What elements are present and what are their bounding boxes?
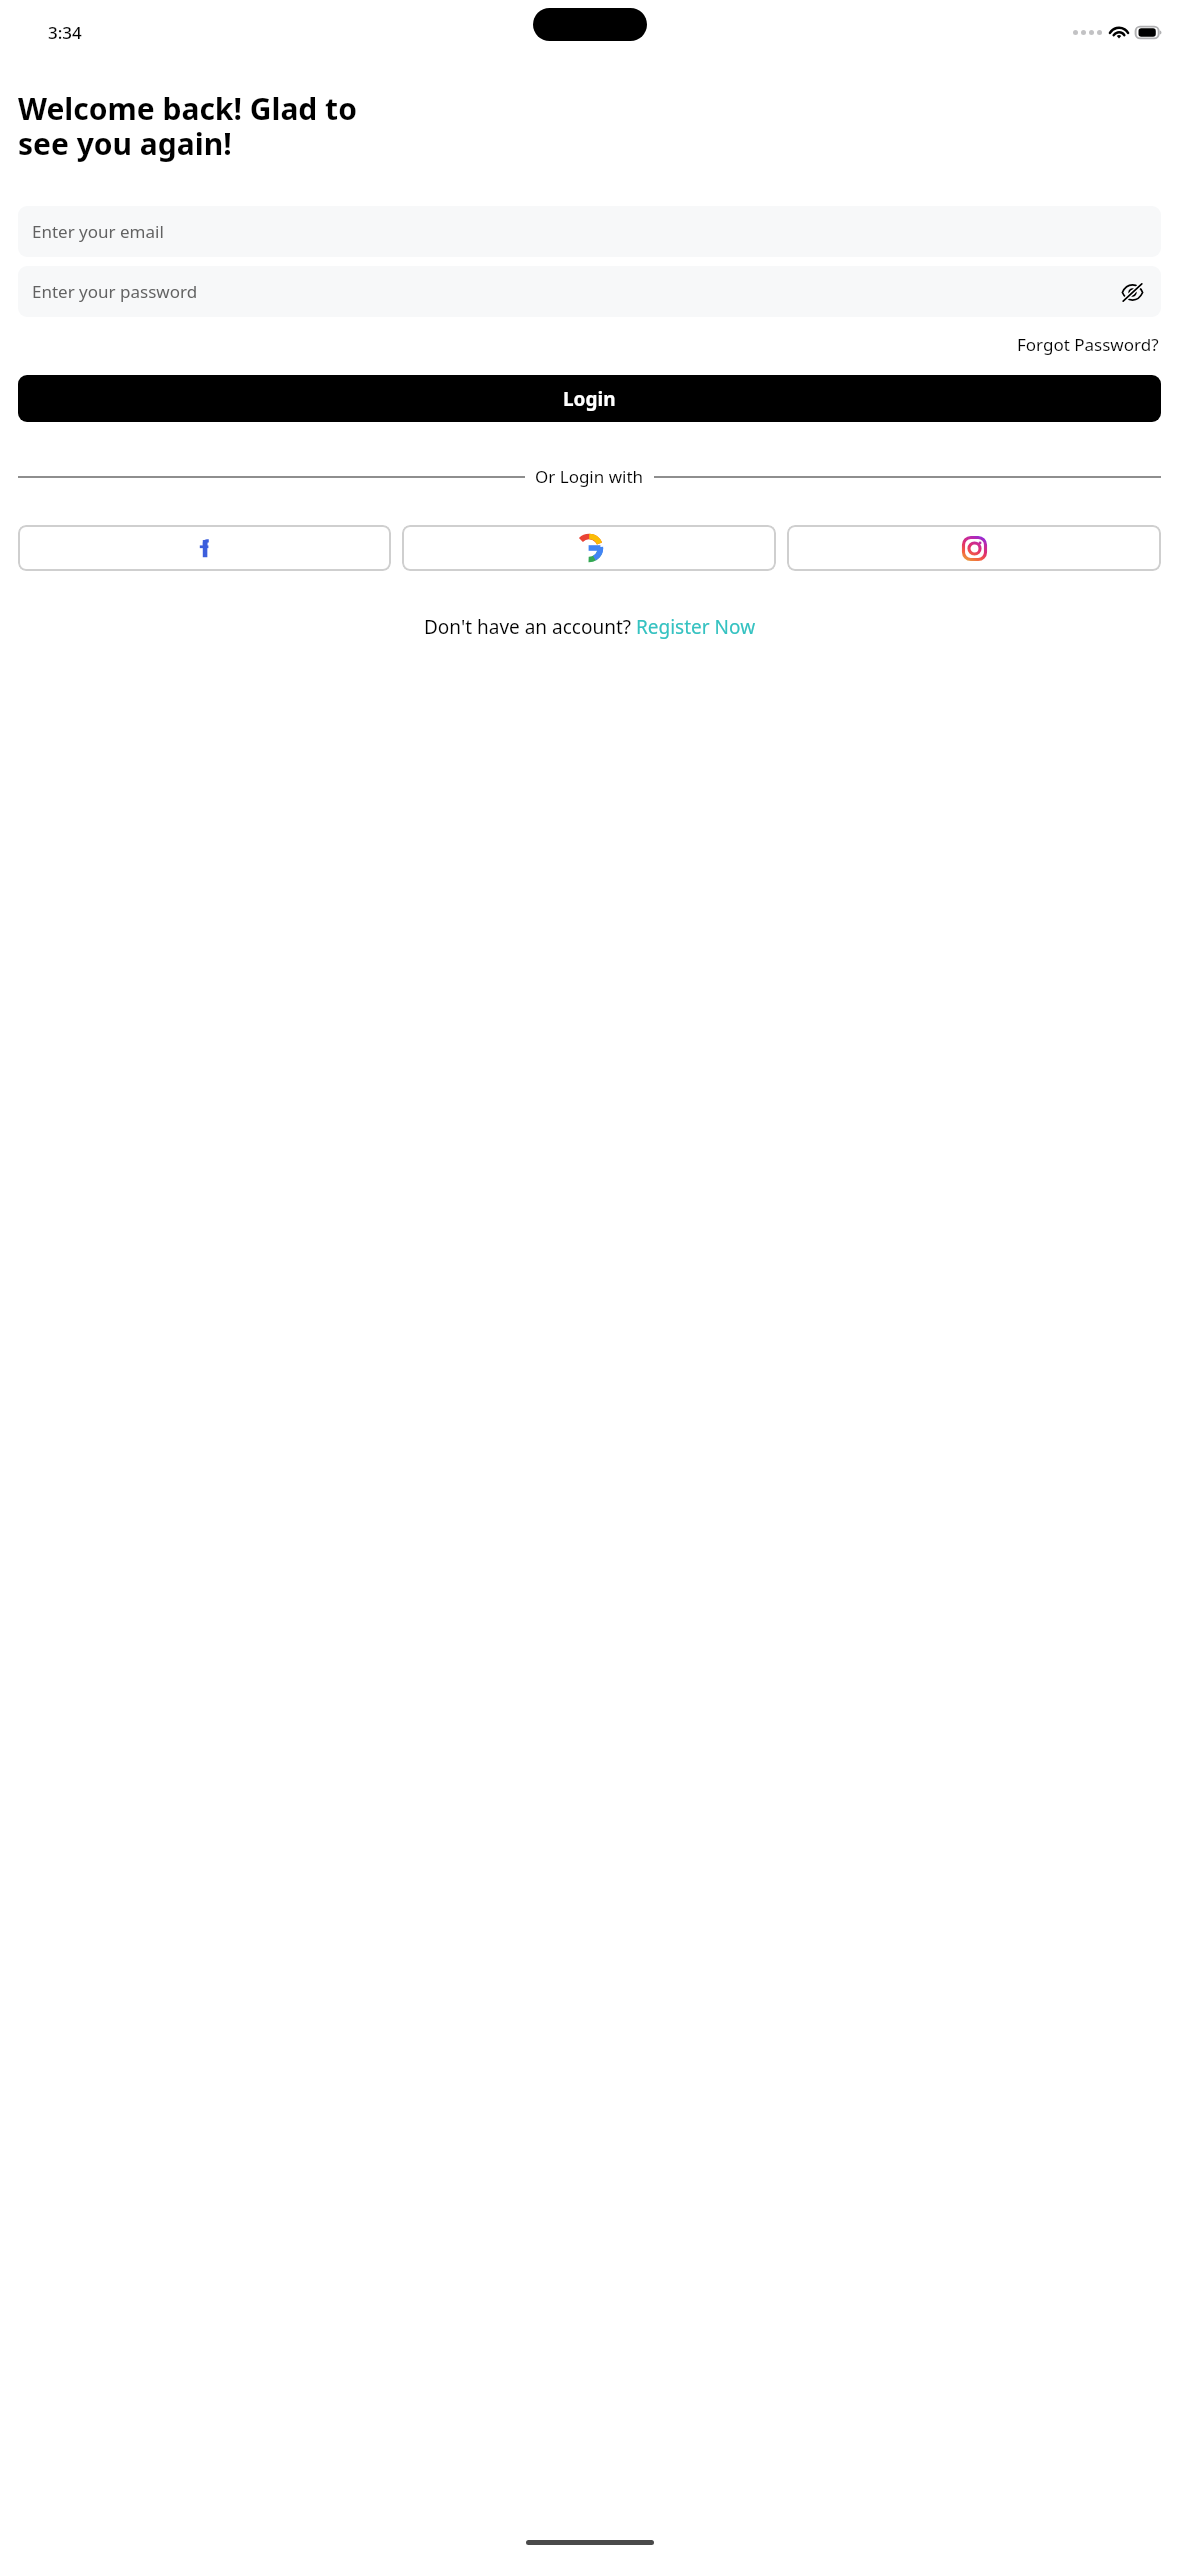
staticText: 3:34	[48, 21, 82, 44]
button[interactable]: Sign in with Instagram	[787, 525, 1161, 571]
button[interactable]: Enter your email	[18, 206, 1161, 257]
button[interactable]: Show password	[1117, 277, 1147, 307]
button[interactable]: Enter your password	[18, 266, 1161, 317]
staticText: Enter your email	[32, 220, 164, 243]
button[interactable]: Login	[18, 375, 1161, 422]
button[interactable]: Forgot Password?	[1015, 331, 1161, 358]
button[interactable]: Register Now	[636, 614, 756, 640]
staticText: Don't have an account?	[424, 614, 636, 640]
staticText: Login	[563, 386, 616, 412]
staticText: Or Login with	[535, 465, 644, 488]
staticText: Welcome back! Glad to see you again!	[18, 88, 357, 164]
staticText: Forgot Password?	[1017, 333, 1159, 356]
button[interactable]: Sign in with Facebook	[18, 525, 391, 571]
staticText: Enter your password	[32, 280, 198, 303]
staticText: Register Now	[636, 614, 756, 640]
button[interactable]: Sign in with Google	[402, 525, 776, 571]
